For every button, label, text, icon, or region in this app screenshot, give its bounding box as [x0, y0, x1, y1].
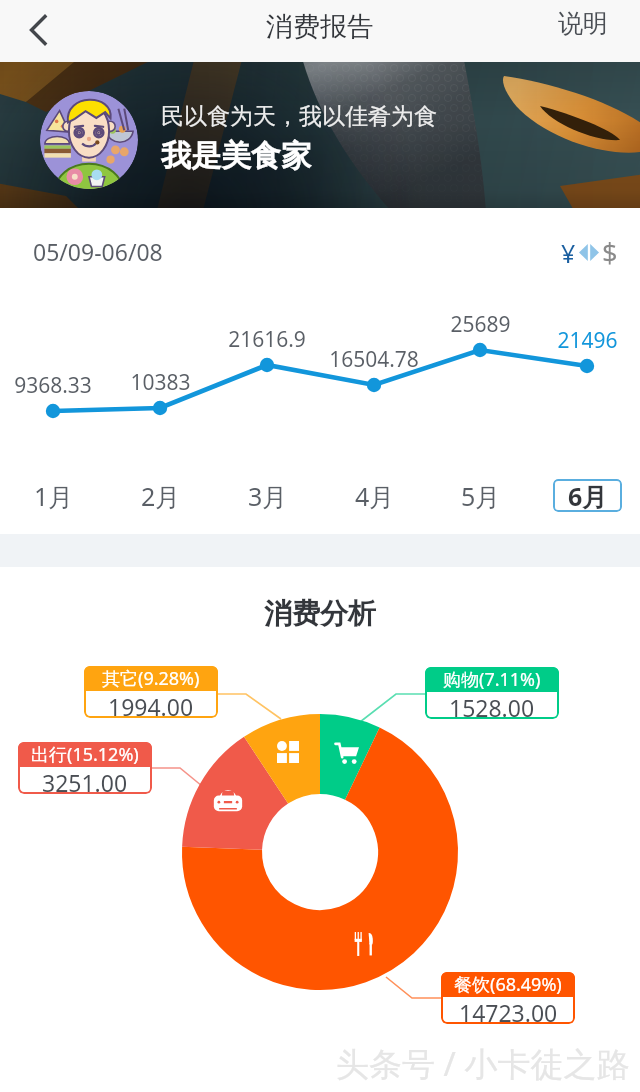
staticText: 4月 [355, 479, 395, 512]
button[interactable]: 1月 [19, 479, 88, 512]
staticText: 10383 [130, 368, 191, 397]
button[interactable]: Switch currency [557, 230, 622, 275]
staticText: 16504.78 [329, 345, 419, 374]
staticText: 25689 [450, 310, 511, 339]
staticText: 6月 [568, 479, 608, 512]
button[interactable]: 出行(15.12%) [18, 742, 152, 794]
staticText: ¥ [561, 236, 576, 270]
button[interactable]: 5月 [446, 479, 515, 512]
button[interactable]: 说明 [532, 2, 640, 61]
button[interactable]: Back [0, 0, 66, 62]
staticText: 头条号 / 小卡徒之路 [336, 1041, 630, 1086]
staticText: 1528.00 [449, 692, 535, 719]
staticText: 我是美食家 [161, 137, 311, 175]
staticText: 1994.00 [108, 691, 194, 718]
button[interactable]: 6月 [553, 479, 622, 512]
staticText: 2月 [141, 479, 181, 512]
staticText: 其它(9.28%) [102, 666, 200, 691]
staticText: 3251.00 [42, 767, 128, 794]
button[interactable]: 购物(7.11%) [425, 667, 559, 719]
staticText: 购物(7.11%) [443, 667, 541, 692]
staticText: 出行(15.12%) [31, 742, 139, 767]
staticText: 21496 [557, 326, 618, 355]
button[interactable]: 4月 [340, 479, 409, 512]
staticText: 5月 [461, 479, 501, 512]
button[interactable]: 3月 [233, 479, 302, 512]
button[interactable]: 其它(9.28%) [84, 666, 218, 718]
staticText: 9368.33 [14, 371, 92, 400]
staticText: 餐饮(68.49%) [454, 972, 562, 997]
staticText: 民以食为天，我以佳肴为食 [161, 102, 437, 131]
staticText: 05/09-06/08 [33, 236, 163, 267]
button[interactable]: 2月 [126, 479, 195, 512]
staticText: 说明 [558, 8, 608, 39]
staticText: 消费报告 [266, 10, 374, 44]
button[interactable]: 餐饮(68.49%) [441, 972, 575, 1024]
staticText: 21616.9 [228, 325, 306, 354]
staticText: 消费分析 [264, 596, 376, 631]
staticText: 14723.00 [459, 997, 558, 1024]
staticText: $ [602, 234, 618, 271]
staticText: 3月 [248, 479, 288, 512]
staticText: 1月 [34, 479, 74, 512]
